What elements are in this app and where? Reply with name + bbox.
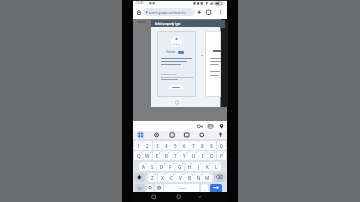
staticText: or xyxy=(201,53,204,56)
button[interactable] xyxy=(149,193,158,201)
button[interactable] xyxy=(205,31,221,97)
button[interactable]: Q xyxy=(134,151,143,160)
button[interactable]: O xyxy=(207,151,216,160)
button[interactable] xyxy=(153,131,161,139)
staticText: 8 xyxy=(201,143,204,149)
button[interactable]: Y xyxy=(180,151,189,160)
button[interactable]: V xyxy=(176,173,185,182)
staticText: U xyxy=(192,153,196,159)
button[interactable]: G xyxy=(175,162,184,171)
button[interactable]: H xyxy=(185,162,194,171)
staticText: C xyxy=(170,175,173,181)
staticText: 1 xyxy=(137,143,140,149)
button[interactable]: English xyxy=(164,184,199,193)
staticText: 0 xyxy=(220,143,223,149)
staticText: S xyxy=(151,164,154,170)
staticText: 9 xyxy=(210,143,213,149)
staticText: T xyxy=(174,153,177,159)
button[interactable]: 7 xyxy=(189,141,198,150)
staticText: N xyxy=(197,175,201,181)
button[interactable]: J xyxy=(194,162,203,171)
button[interactable]: P xyxy=(217,151,226,160)
button[interactable]: W xyxy=(143,151,152,160)
staticText: 6 xyxy=(183,143,186,149)
button[interactable]: I xyxy=(198,151,207,160)
button[interactable]: 9 xyxy=(207,141,216,150)
button[interactable]: Z xyxy=(148,173,157,182)
button[interactable]: B xyxy=(185,173,194,182)
staticText: X xyxy=(161,175,164,181)
button[interactable] xyxy=(205,9,212,16)
button[interactable] xyxy=(218,9,224,16)
button[interactable] xyxy=(147,184,153,193)
button[interactable]: L xyxy=(212,162,221,171)
button[interactable]: T xyxy=(171,151,180,160)
button[interactable]: 8 xyxy=(198,141,207,150)
button[interactable]: . xyxy=(201,184,208,193)
button[interactable]: M xyxy=(203,173,212,182)
button[interactable] xyxy=(183,131,191,139)
button[interactable]: E xyxy=(153,151,162,160)
button[interactable] xyxy=(137,131,145,139)
button[interactable]: 1 xyxy=(134,141,143,150)
button[interactable] xyxy=(218,122,225,130)
button[interactable]: 4 xyxy=(162,141,171,150)
staticText: Z xyxy=(151,175,154,181)
button[interactable] xyxy=(195,193,204,201)
button[interactable] xyxy=(207,122,214,130)
button[interactable]: R xyxy=(162,151,171,160)
button[interactable]: X xyxy=(158,173,167,182)
staticText: R xyxy=(165,153,168,159)
staticText: E xyxy=(156,153,159,159)
staticText: D xyxy=(160,164,164,170)
staticText: 4 xyxy=(165,143,168,149)
staticText: . xyxy=(204,186,206,192)
button[interactable]: 6 xyxy=(180,141,189,150)
button[interactable] xyxy=(135,173,145,182)
button[interactable] xyxy=(155,184,163,193)
button[interactable]: A xyxy=(139,162,148,171)
button[interactable] xyxy=(168,131,176,139)
button[interactable]: U xyxy=(189,151,198,160)
staticText: search.google.com/search-c xyxy=(149,11,186,15)
staticText: 10:45 xyxy=(136,1,144,5)
button[interactable] xyxy=(169,85,183,89)
button[interactable] xyxy=(210,184,222,193)
button[interactable]: 5 xyxy=(171,141,180,150)
staticText: W xyxy=(145,153,150,159)
staticText: M xyxy=(205,175,210,181)
button[interactable] xyxy=(217,131,225,139)
staticText: L xyxy=(215,164,218,170)
staticText: 2 xyxy=(146,143,149,149)
button[interactable]: F xyxy=(166,162,175,171)
staticText: 5 xyxy=(174,143,177,149)
button[interactable] xyxy=(196,9,203,16)
staticText: example.com xyxy=(161,72,177,75)
button[interactable] xyxy=(143,8,195,16)
button[interactable] xyxy=(160,71,192,78)
button[interactable] xyxy=(157,31,196,97)
button[interactable] xyxy=(198,131,206,139)
button[interactable] xyxy=(214,173,225,182)
button[interactable]: K xyxy=(203,162,212,171)
staticText: G xyxy=(178,164,182,170)
button[interactable] xyxy=(136,9,143,16)
button[interactable]: 0 xyxy=(217,141,226,150)
button[interactable]: D xyxy=(157,162,166,171)
button[interactable]: S xyxy=(148,162,157,171)
button[interactable]: !#1 xyxy=(135,184,145,193)
button[interactable]: C xyxy=(167,173,176,182)
staticText: O xyxy=(210,153,214,159)
staticText: I xyxy=(202,153,204,159)
staticText: Y xyxy=(183,153,186,159)
button[interactable]: 3 xyxy=(153,141,162,150)
button[interactable]: 2 xyxy=(143,141,152,150)
staticText: P xyxy=(220,153,223,159)
staticText: English xyxy=(178,187,186,190)
button[interactable]: N xyxy=(194,173,203,182)
button[interactable] xyxy=(197,122,204,130)
staticText: B xyxy=(188,175,191,181)
button[interactable] xyxy=(174,193,183,201)
staticText: Select property type xyxy=(155,22,181,26)
staticText: !#1 xyxy=(138,187,142,191)
